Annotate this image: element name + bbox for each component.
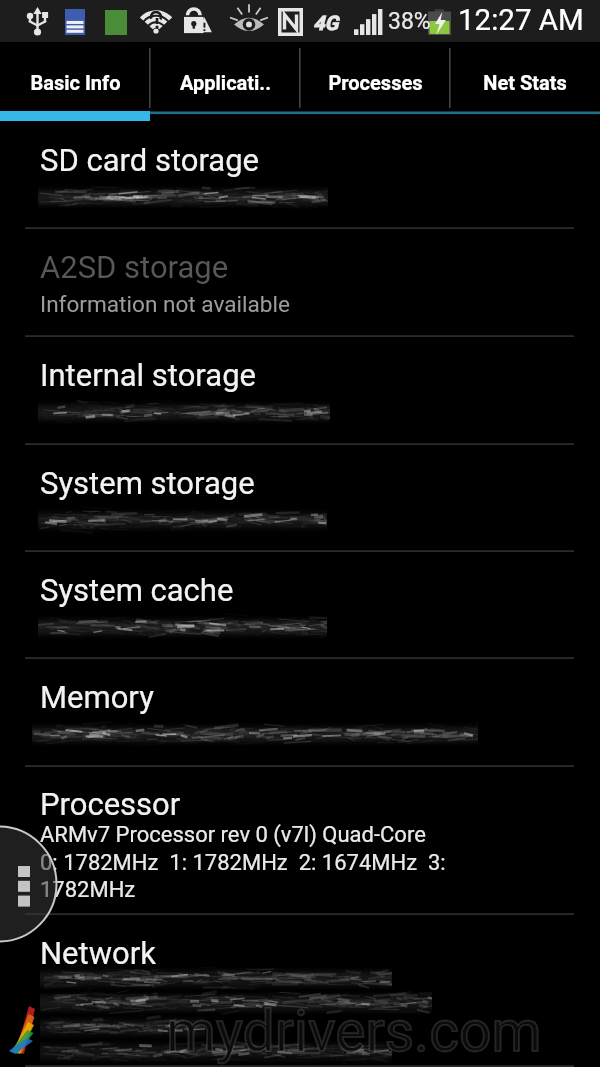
staticText: 12:27 AM xyxy=(458,3,584,38)
button[interactable]: Network xyxy=(0,915,600,1067)
staticText: Basic Info xyxy=(30,71,121,94)
staticText: Net Stats xyxy=(483,71,567,94)
button[interactable]: Basic Info xyxy=(0,42,150,122)
staticText: Information not available xyxy=(40,291,290,317)
button[interactable]: Internal storage xyxy=(0,337,600,445)
button[interactable]: System cache xyxy=(0,552,600,659)
button[interactable]: Memory xyxy=(0,659,600,767)
button[interactable]: Applicati.. xyxy=(150,42,300,122)
staticText: Memory xyxy=(40,679,154,715)
button[interactable]: System storage xyxy=(0,445,600,552)
staticText: 4G xyxy=(313,11,339,34)
staticText: Internal storage xyxy=(40,357,256,393)
staticText: System storage xyxy=(40,465,255,501)
other: Floating menu xyxy=(0,0,600,1067)
staticText: Processes xyxy=(328,71,423,94)
button[interactable]: A2SD storage xyxy=(0,229,600,337)
staticText: 38% xyxy=(388,8,431,35)
staticText: System cache xyxy=(40,572,234,608)
staticText: A2SD storage xyxy=(40,249,229,285)
button[interactable]: Net Stats xyxy=(450,42,600,122)
button[interactable]: Processor xyxy=(0,767,600,915)
button[interactable]: Processes xyxy=(300,42,450,122)
staticText: SD card storage xyxy=(40,142,260,178)
staticText: Network xyxy=(40,935,156,971)
button[interactable]: SD card storage xyxy=(0,122,600,229)
staticText: Processor xyxy=(40,786,181,822)
staticText: ARMv7 Processor rev 0 (v7l) Quad-Core 0:… xyxy=(40,822,485,902)
staticText: Applicati.. xyxy=(180,71,271,94)
